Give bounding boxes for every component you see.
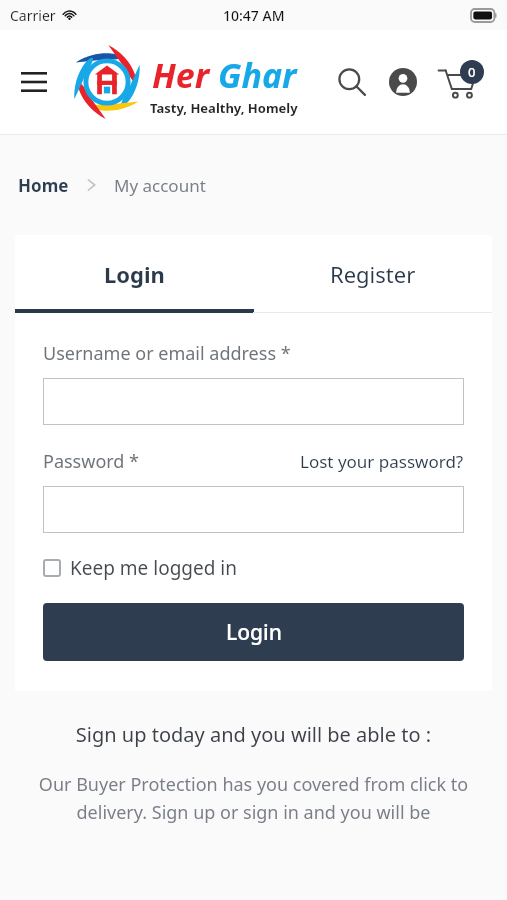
button[interactable]: Register bbox=[253, 235, 492, 313]
staticText: My account bbox=[114, 174, 206, 197]
staticText: Lost your password? bbox=[300, 450, 464, 473]
staticText: Sign up today and you will be able to : bbox=[0, 721, 507, 748]
staticText: 10:47 AM bbox=[223, 6, 285, 25]
staticText: Password * bbox=[43, 449, 140, 474]
button[interactable]: Search bbox=[330, 60, 374, 104]
staticText: Keep me logged in bbox=[70, 555, 237, 581]
staticText: Home bbox=[18, 174, 69, 197]
button[interactable] bbox=[43, 378, 464, 425]
button[interactable]: Login bbox=[15, 235, 253, 313]
button[interactable]: Login bbox=[43, 603, 464, 661]
button[interactable]: Home bbox=[18, 174, 69, 197]
staticText: Ghar bbox=[218, 52, 297, 98]
staticText: 0 bbox=[468, 63, 476, 81]
button[interactable]: Lost your password? bbox=[300, 450, 464, 473]
button[interactable] bbox=[43, 486, 464, 533]
staticText: Register bbox=[330, 259, 416, 289]
button[interactable]: Keep me logged in bbox=[43, 555, 237, 581]
staticText: Carrier bbox=[10, 6, 56, 25]
staticText: Her bbox=[152, 52, 210, 98]
button[interactable]: Menu bbox=[14, 62, 54, 102]
staticText: Username or email address * bbox=[43, 341, 291, 366]
staticText: Login bbox=[104, 259, 165, 289]
staticText: Tasty, Healthy, Homely bbox=[150, 99, 298, 117]
button[interactable]: Cart, 0 items bbox=[432, 56, 484, 108]
staticText: Our Buyer Protection has you covered fro… bbox=[22, 772, 485, 824]
button[interactable]: Account bbox=[383, 62, 423, 102]
staticText: Login bbox=[226, 618, 282, 647]
button[interactable]: Her Ghar logo bbox=[66, 41, 148, 123]
